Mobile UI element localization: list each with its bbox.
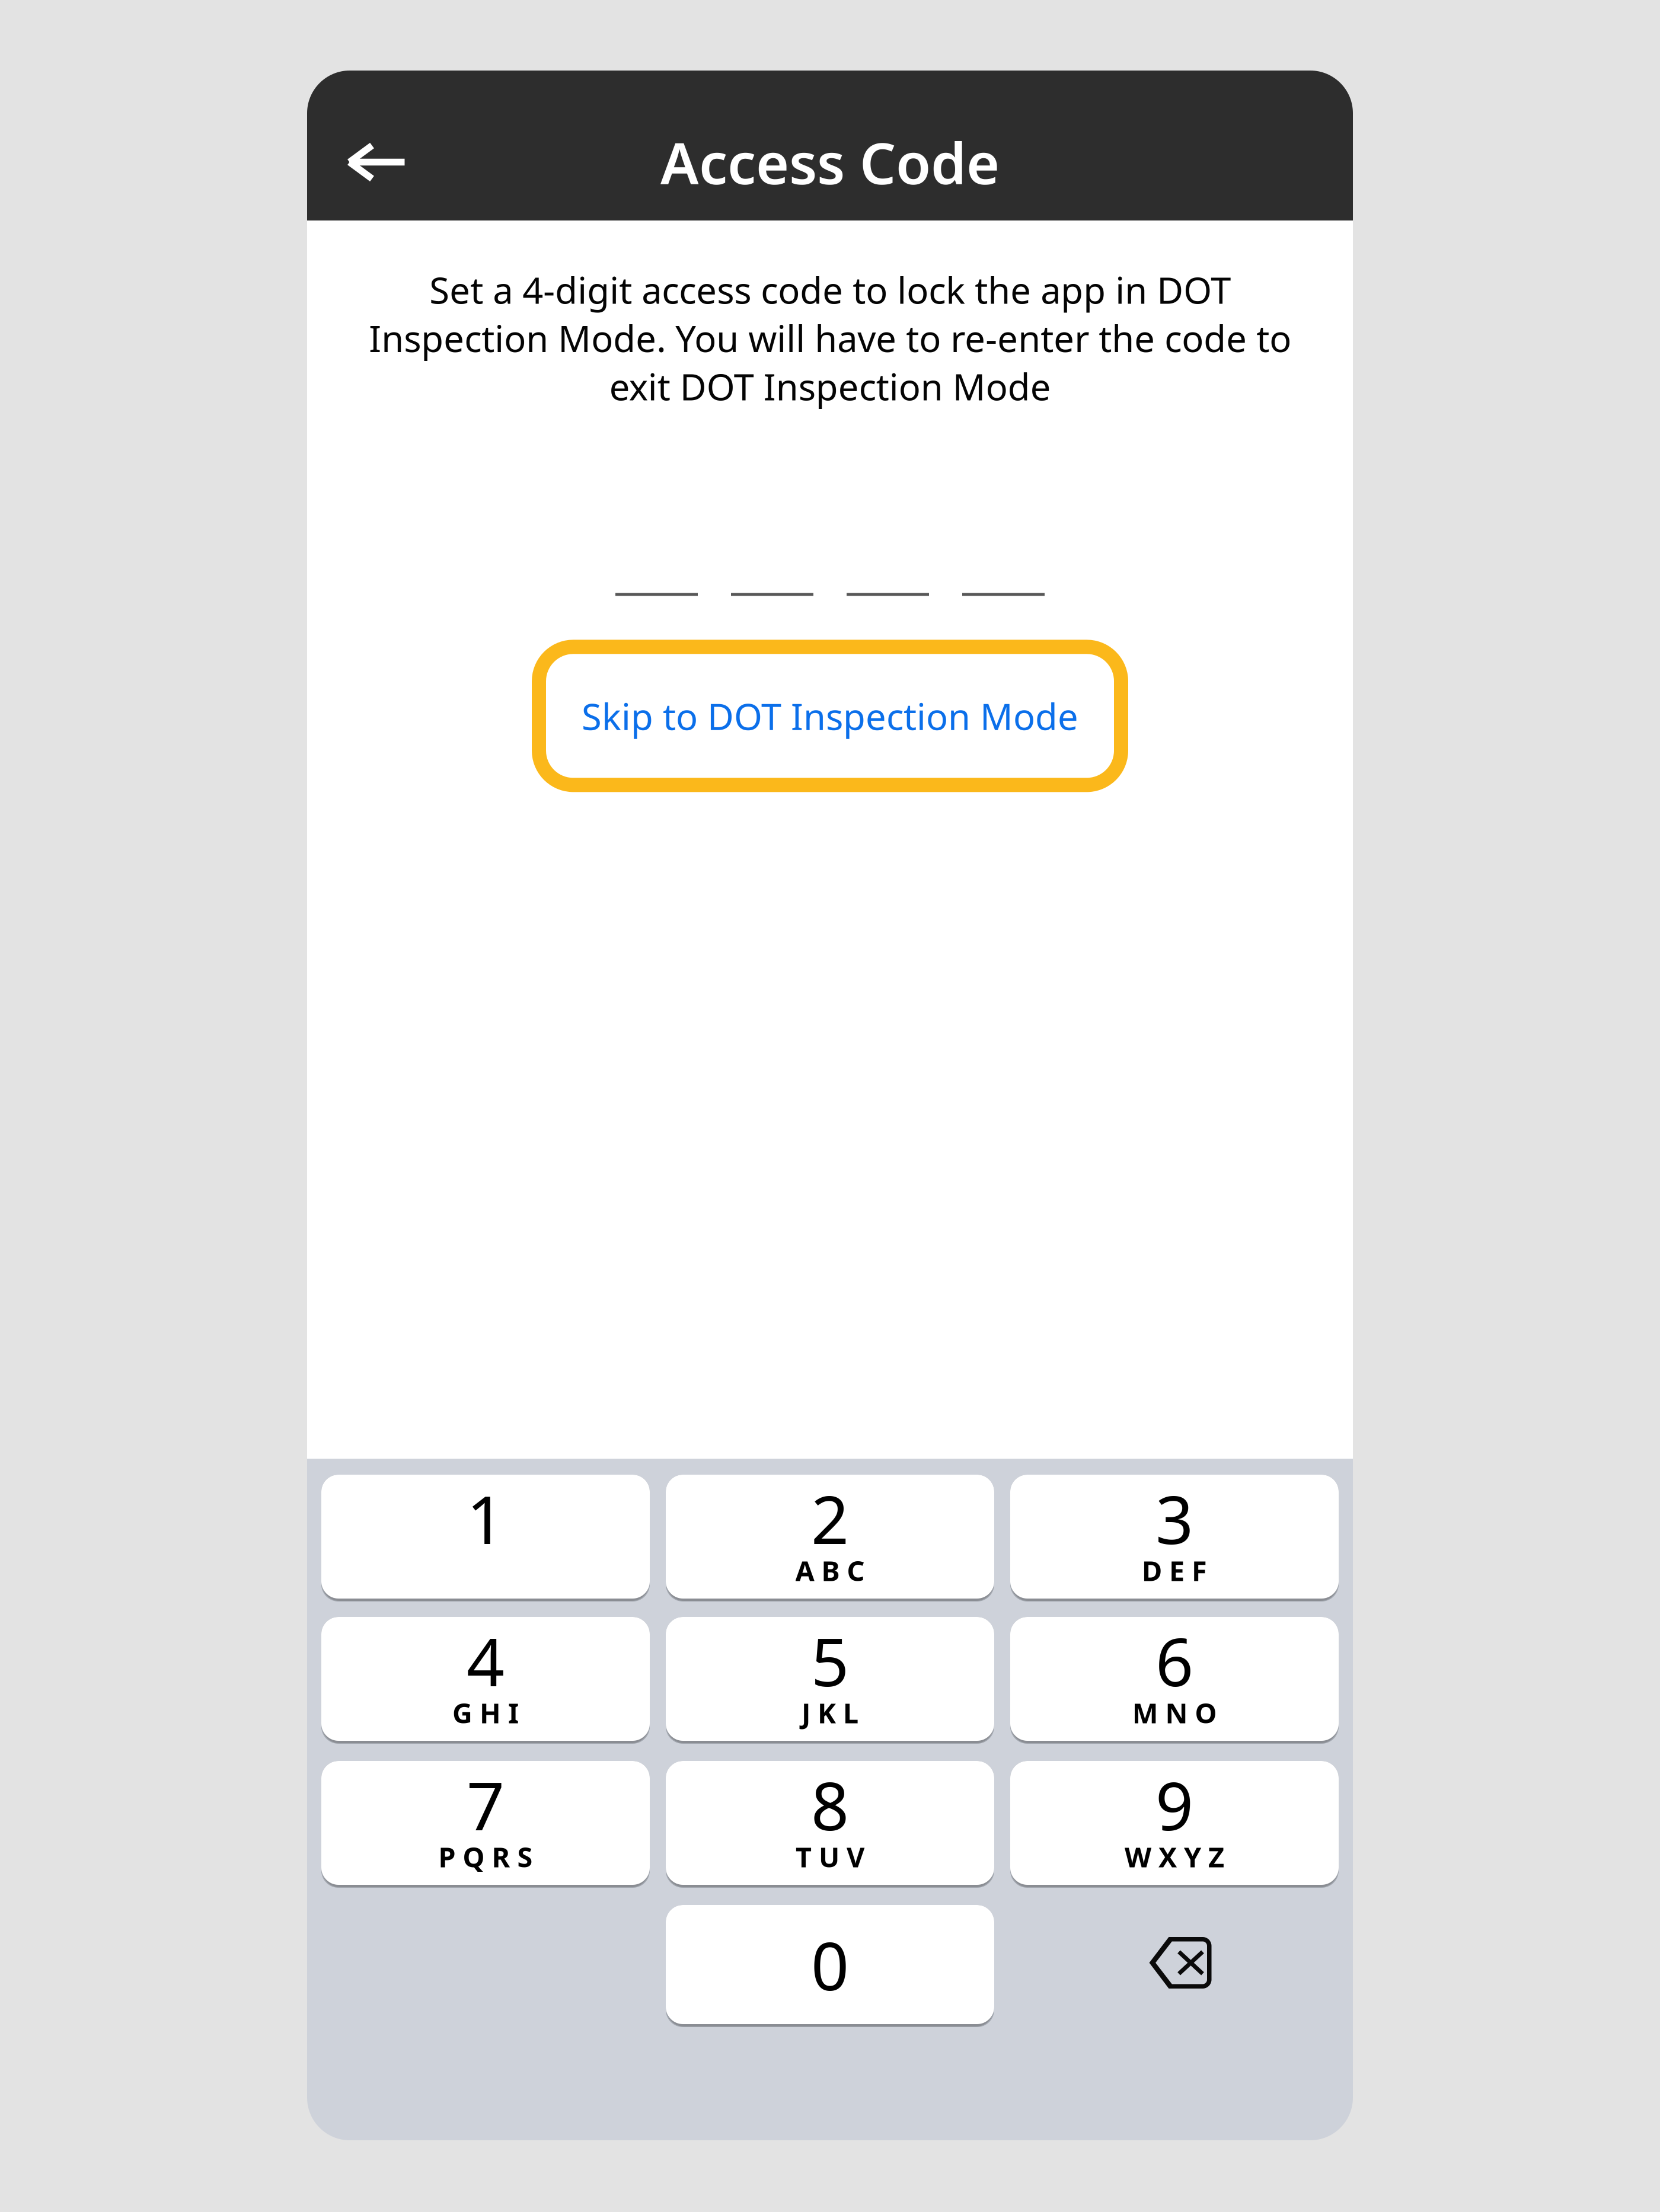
- staticText: M N O: [1132, 1694, 1217, 1731]
- staticText: 4: [467, 1616, 505, 1705]
- staticText: 9: [1155, 1760, 1193, 1849]
- button[interactable]: 9: [1010, 1761, 1339, 1885]
- staticText: A B C: [795, 1552, 865, 1589]
- staticText: 5: [811, 1616, 849, 1705]
- staticText: J K L: [802, 1694, 858, 1731]
- button[interactable]: Delete: [1010, 1905, 1339, 2029]
- staticText: T U V: [796, 1838, 864, 1875]
- staticText: 2: [811, 1474, 849, 1562]
- staticText: W X Y Z: [1125, 1838, 1224, 1875]
- button[interactable]: 5: [666, 1617, 994, 1741]
- button[interactable]: 4: [321, 1617, 650, 1741]
- button[interactable]: Back: [307, 87, 446, 237]
- button[interactable]: 0: [666, 1905, 994, 2024]
- staticText: Skip to DOT Inspection Mode: [582, 692, 1078, 740]
- staticText: Access Code: [660, 124, 1000, 200]
- staticText: D E F: [1142, 1552, 1207, 1589]
- button[interactable]: 8: [666, 1761, 994, 1885]
- staticText: 7: [467, 1760, 505, 1849]
- staticText: 1: [467, 1474, 505, 1562]
- staticText: 8: [811, 1760, 849, 1849]
- staticText: P Q R S: [438, 1838, 533, 1875]
- staticText: 0: [811, 1920, 849, 2009]
- button[interactable]: 3: [1010, 1475, 1339, 1599]
- button[interactable]: 6: [1010, 1617, 1339, 1741]
- staticText: 3: [1155, 1474, 1193, 1562]
- button[interactable]: 1: [321, 1475, 650, 1599]
- button[interactable]: 2: [666, 1475, 994, 1599]
- staticText: G H I: [452, 1694, 519, 1731]
- staticText: Set a 4-digit access code to lock the ap…: [369, 266, 1291, 410]
- staticText: 6: [1155, 1616, 1193, 1705]
- button[interactable]: 7: [321, 1761, 650, 1885]
- button[interactable]: Skip to DOT Inspection Mode: [539, 647, 1121, 785]
